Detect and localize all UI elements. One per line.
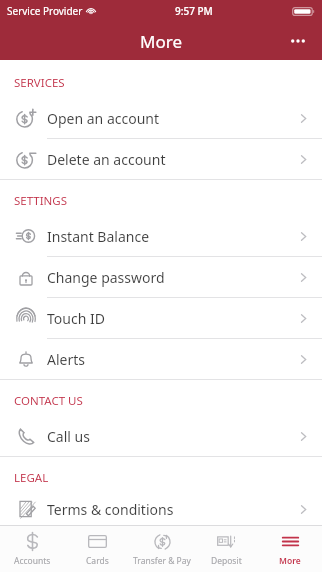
- button[interactable]: Open an account: [0, 98, 322, 138]
- staticText: Terms & conditions: [47, 500, 174, 519]
- staticText: 9:57 PM: [175, 4, 213, 18]
- button[interactable]: More options: [282, 25, 314, 57]
- staticText: LEGAL: [14, 470, 49, 486]
- staticText: Transfer & Pay: [133, 555, 191, 567]
- button[interactable]: More: [258, 526, 322, 572]
- staticText: Call us: [47, 427, 90, 446]
- staticText: Alerts: [47, 350, 85, 369]
- staticText: CONTACT US: [14, 393, 83, 409]
- staticText: Deposit: [211, 555, 242, 567]
- button[interactable]: Terms & conditions: [0, 493, 322, 525]
- staticText: Instant Balance: [47, 227, 150, 246]
- staticText: More: [140, 30, 182, 53]
- button[interactable]: Touch ID: [0, 298, 322, 338]
- staticText: Delete an account: [47, 150, 166, 169]
- staticText: More: [279, 555, 301, 567]
- staticText: Accounts: [14, 555, 51, 567]
- staticText: Open an account: [47, 109, 159, 128]
- staticText: Change password: [47, 268, 165, 287]
- staticText: SETTINGS: [14, 193, 68, 209]
- button[interactable]: Alerts: [0, 339, 322, 379]
- staticText: Service Provider: [7, 4, 83, 18]
- button[interactable]: Change password: [0, 257, 322, 297]
- button[interactable]: Cards: [65, 526, 130, 572]
- staticText: Cards: [86, 555, 109, 567]
- button[interactable]: Accounts: [0, 526, 65, 572]
- button[interactable]: Instant Balance: [0, 216, 322, 256]
- button[interactable]: Transfer & Pay: [130, 526, 194, 572]
- button[interactable]: Delete an account: [0, 139, 322, 179]
- staticText: Touch ID: [47, 309, 105, 328]
- button[interactable]: Deposit: [194, 526, 258, 572]
- button[interactable]: Call us: [0, 416, 322, 456]
- staticText: SERVICES: [14, 75, 65, 91]
